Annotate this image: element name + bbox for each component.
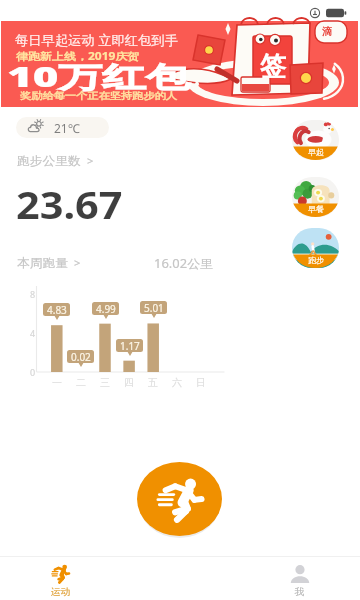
staticText: 本周跑量 — [17, 255, 68, 270]
staticText: 运动 — [50, 586, 70, 598]
button[interactable]: 本周跑量 — [17, 255, 81, 270]
staticText: 签 — [260, 50, 286, 83]
button[interactable]: 早起 — [292, 120, 339, 160]
staticText: > — [74, 255, 81, 270]
staticText: 0.02 — [71, 350, 91, 363]
staticText: 跑步公里数 — [17, 153, 81, 168]
staticText: 4.83 — [47, 303, 67, 316]
staticText: > — [87, 153, 94, 168]
staticText: 我 — [295, 586, 305, 598]
staticText: 早起 — [308, 147, 324, 157]
staticText: 早餐 — [308, 204, 324, 214]
button[interactable]: 早餐 — [292, 177, 339, 217]
button[interactable]: 跑步公里数 — [17, 153, 94, 168]
staticText: 8 — [30, 288, 36, 300]
staticText: 一 — [52, 376, 62, 389]
staticText: 跑步 — [308, 255, 324, 265]
staticText: 每日早起运动 立即红包到手 — [15, 31, 179, 49]
staticText: 三 — [100, 376, 110, 389]
button[interactable]: 运动 — [0, 557, 120, 600]
staticText: 10万红包 — [7, 57, 191, 95]
staticText: 16.02公里 — [154, 255, 213, 271]
staticText: 0 — [30, 366, 36, 378]
button[interactable]: 跑步 — [292, 228, 339, 268]
staticText: 奖励给每一个正在坚持跑步的人 — [20, 90, 177, 102]
staticText: 23.67 — [16, 179, 123, 229]
staticText: 4.99 — [96, 302, 116, 315]
staticText: 四 — [124, 376, 134, 389]
button[interactable]: Daily red packet banner — [1, 21, 358, 107]
staticText: 1.17 — [120, 339, 140, 352]
staticText: 六 — [172, 376, 182, 389]
staticText: 律跑新上线，2019庆贺 — [16, 49, 140, 63]
staticText: 4 — [30, 327, 36, 339]
staticText: 日 — [196, 376, 206, 389]
staticText: 五 — [148, 376, 158, 389]
staticText: 二 — [76, 376, 86, 389]
staticText: 5.01 — [144, 301, 164, 314]
staticText: 滴 — [322, 25, 332, 38]
button[interactable]: 我 — [240, 557, 360, 600]
button[interactable]: 21℃ — [16, 117, 109, 138]
staticText: 21℃ — [54, 120, 80, 136]
button[interactable]: Start running — [137, 462, 222, 536]
